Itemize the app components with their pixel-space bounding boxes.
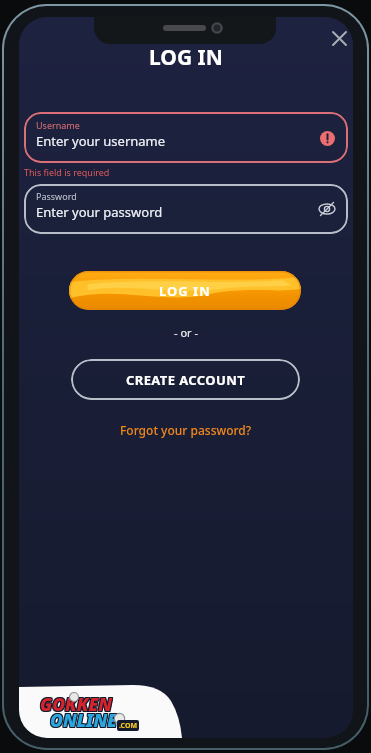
button[interactable]: Forgot your password?	[120, 422, 252, 438]
staticText: Password	[36, 190, 77, 202]
staticText: Enter your password	[36, 203, 163, 221]
staticText: - or -	[174, 325, 199, 340]
button[interactable]: LOG IN	[69, 271, 301, 310]
staticText: CREATE ACCOUNT	[126, 371, 246, 389]
staticText: This field is required	[24, 166, 110, 178]
staticText: GOKKEN	[39, 692, 112, 716]
staticText: Enter your username	[36, 132, 166, 150]
staticText: LOG IN	[159, 282, 211, 300]
button[interactable]: Username	[24, 112, 348, 163]
staticText: ONLINE	[51, 709, 119, 733]
staticText: GOKKEN	[40, 692, 113, 716]
staticText: GOKKEN	[41, 693, 114, 717]
staticText: GOKKEN	[39, 691, 112, 715]
staticText: ONLINE	[50, 709, 118, 733]
staticText: ONLINE	[49, 707, 117, 731]
staticText: .COM	[119, 721, 138, 731]
staticText: GOKKEN	[40, 693, 113, 717]
staticText: ONLINE	[50, 708, 118, 732]
staticText: GOKKEN	[39, 693, 112, 717]
staticText: LOG IN	[149, 43, 223, 72]
staticText: ONLINE	[51, 708, 119, 732]
staticText: ONLINE	[49, 709, 117, 733]
staticText: GOKKEN	[41, 692, 114, 716]
staticText: GOKKEN	[40, 691, 113, 715]
staticText: Username	[36, 119, 80, 131]
staticText: ONLINE	[49, 708, 117, 732]
staticText: ONLINE	[51, 707, 119, 731]
staticText: GOKKEN	[41, 691, 114, 715]
button[interactable]	[326, 25, 353, 52]
staticText: ONLINE	[50, 707, 118, 731]
button[interactable]: Password	[24, 184, 348, 234]
button[interactable]: CREATE ACCOUNT	[71, 359, 300, 400]
